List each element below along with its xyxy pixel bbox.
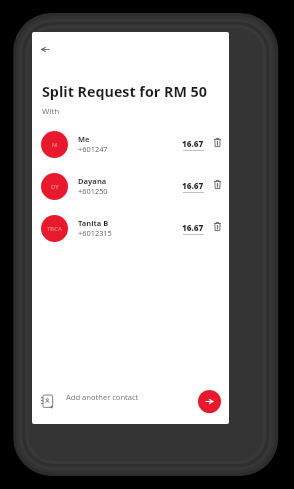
button[interactable]: Delete	[211, 178, 224, 191]
staticText: 16.67	[182, 138, 204, 149]
staticText: Me	[78, 134, 90, 144]
staticText: Tanita B	[78, 218, 109, 228]
staticText: +601247	[78, 144, 108, 154]
staticText: +6012315	[78, 228, 112, 238]
button[interactable]: Add contact	[41, 394, 53, 408]
staticText: With	[42, 105, 60, 116]
button[interactable]: Continue	[198, 390, 221, 413]
staticText: 16.67	[182, 180, 204, 191]
staticText: DY	[51, 183, 59, 191]
button[interactable]: DY	[32, 165, 229, 207]
button[interactable]: Add another contact	[66, 392, 139, 402]
staticText: TBCA	[47, 225, 62, 233]
staticText: Dayana	[78, 176, 107, 186]
staticText: M	[52, 141, 58, 149]
button[interactable]: TBCA	[32, 207, 229, 249]
button[interactable]: Back	[34, 38, 56, 60]
button[interactable]: Delete	[211, 220, 224, 233]
button[interactable]: M	[32, 123, 229, 165]
staticText: Split Request for RM 50	[42, 82, 207, 101]
staticText: 16.67	[182, 222, 204, 233]
button[interactable]: Delete	[211, 136, 224, 149]
staticText: +601250	[78, 186, 108, 196]
